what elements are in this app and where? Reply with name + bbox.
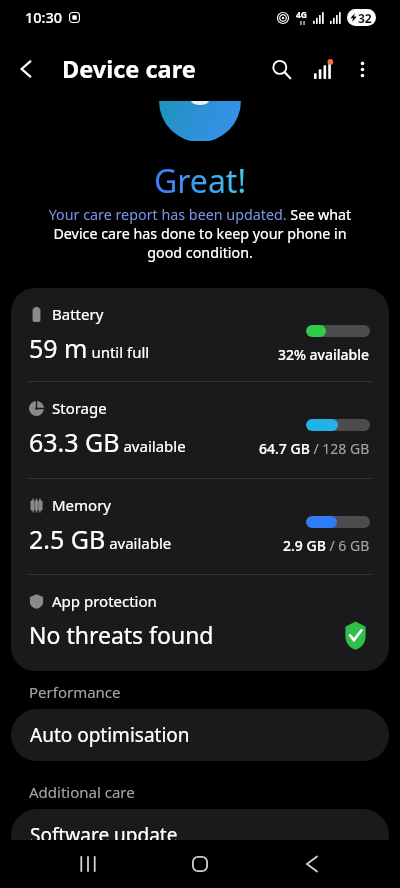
button[interactable]: Back: [276, 840, 348, 888]
button[interactable]: Usage statistics: [303, 41, 343, 97]
staticText: App protection: [52, 591, 157, 611]
staticText: Battery: [52, 304, 104, 324]
button[interactable]: Navigate up: [0, 41, 52, 97]
button[interactable]: Storage: [11, 382, 389, 478]
staticText: Your care report has been updated. See w…: [42, 205, 358, 262]
staticText: 32% available: [278, 345, 370, 364]
staticText: Memory: [52, 495, 112, 515]
staticText: 64.7 GB / 128 GB: [259, 439, 370, 458]
button[interactable]: App protection: [11, 575, 389, 671]
button[interactable]: Memory: [11, 479, 389, 574]
staticText: 2.9 GB / 6 GB: [283, 536, 370, 555]
button[interactable]: Recent apps: [52, 840, 124, 888]
staticText: 59 m until full: [29, 331, 150, 365]
button[interactable]: Auto optimisation: [11, 709, 389, 761]
staticText: Additional care: [29, 782, 135, 802]
staticText: No threats found: [29, 619, 214, 650]
staticText: 32: [358, 10, 372, 26]
staticText: 4G: [296, 9, 308, 21]
staticText: 10:30: [25, 7, 63, 27]
staticText: Device care: [62, 53, 196, 85]
button[interactable]: Battery: [11, 288, 389, 381]
staticText: 2.5 GB available: [29, 522, 172, 556]
staticText: Great!: [154, 159, 247, 203]
staticText: Performance: [29, 682, 121, 702]
staticText: Auto optimisation: [30, 722, 190, 748]
staticText: Storage: [52, 398, 107, 418]
button[interactable]: More options: [343, 41, 381, 97]
staticText: 63.3 GB available: [29, 425, 186, 459]
button[interactable]: Home: [164, 840, 236, 888]
staticText: Software update: [30, 822, 178, 848]
button[interactable]: Search: [259, 41, 303, 97]
button[interactable]: Software update: [11, 809, 389, 861]
